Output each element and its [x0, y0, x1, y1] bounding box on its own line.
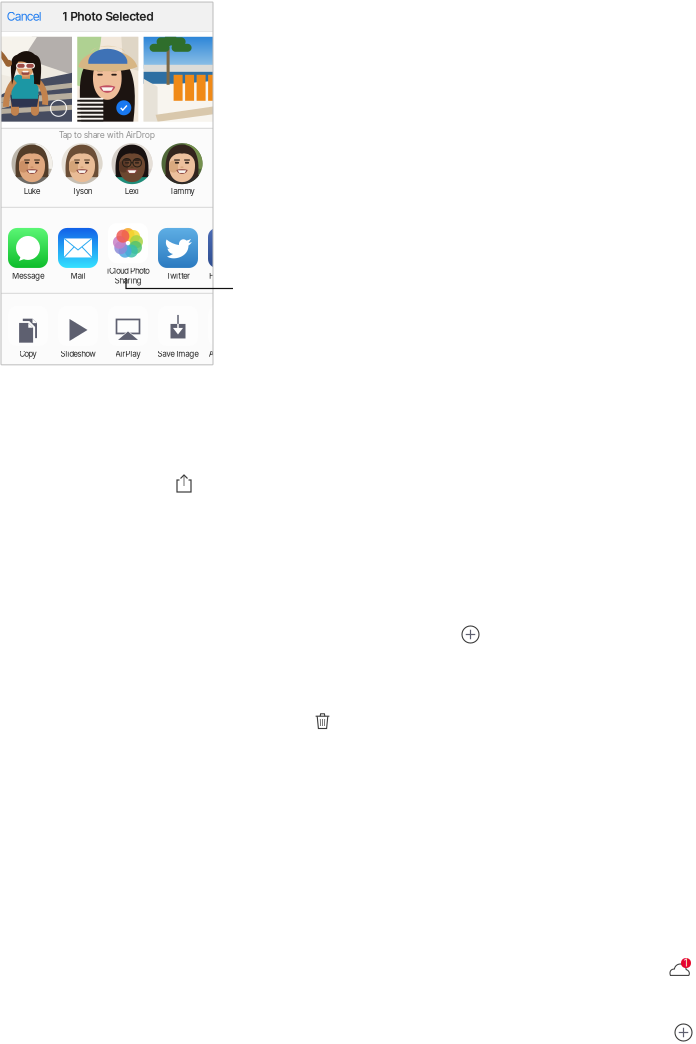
button[interactable]: Lexi	[111, 143, 152, 196]
staticText: Save Image	[157, 349, 198, 359]
button[interactable]: Cancel	[1, 3, 41, 30]
staticText: iCloud Photo Sharing	[107, 266, 149, 285]
button[interactable]: Add	[674, 1023, 693, 1042]
staticText: Mail	[70, 271, 85, 281]
button[interactable]: Mail	[58, 220, 98, 281]
button[interactable]: Copy	[8, 300, 48, 359]
button[interactable]: Message	[8, 220, 48, 281]
button[interactable]: Tammy	[161, 143, 202, 196]
button[interactable]: Slideshow	[58, 300, 98, 359]
staticText: Tammy	[169, 186, 194, 196]
staticText: AirPlay	[115, 349, 140, 359]
button[interactable]: Add	[461, 625, 480, 644]
staticText: 1 Photo Selected	[62, 9, 153, 24]
staticText: Twitter	[166, 271, 190, 281]
staticText: Copy	[19, 349, 36, 359]
button[interactable]: Assign	[208, 300, 248, 359]
staticText: Message	[12, 271, 44, 281]
button[interactable]: Tyson	[61, 143, 102, 196]
button[interactable]: Delete	[314, 711, 331, 731]
staticText: Lexi	[125, 186, 139, 196]
button[interactable]: iCloud Photo Sharing	[108, 215, 148, 285]
button[interactable]: iCloud	[664, 957, 690, 976]
staticText: Assign	[209, 349, 233, 359]
button[interactable]: f	[208, 220, 248, 281]
staticText: Luke	[24, 186, 40, 196]
button[interactable]: Twitter	[158, 220, 198, 281]
staticText: Tap to share with AirDrop	[59, 130, 155, 140]
staticText: Facebook	[209, 271, 241, 281]
button[interactable]: AirPlay	[108, 300, 148, 359]
staticText: Tyson	[72, 186, 92, 196]
button[interactable]: Share	[175, 473, 193, 494]
button[interactable]: Save Image	[158, 300, 198, 359]
staticText: Cancel	[7, 9, 41, 24]
staticText: Slideshow	[60, 349, 95, 359]
button[interactable]: Luke	[11, 143, 52, 196]
staticText: 1	[684, 957, 688, 969]
